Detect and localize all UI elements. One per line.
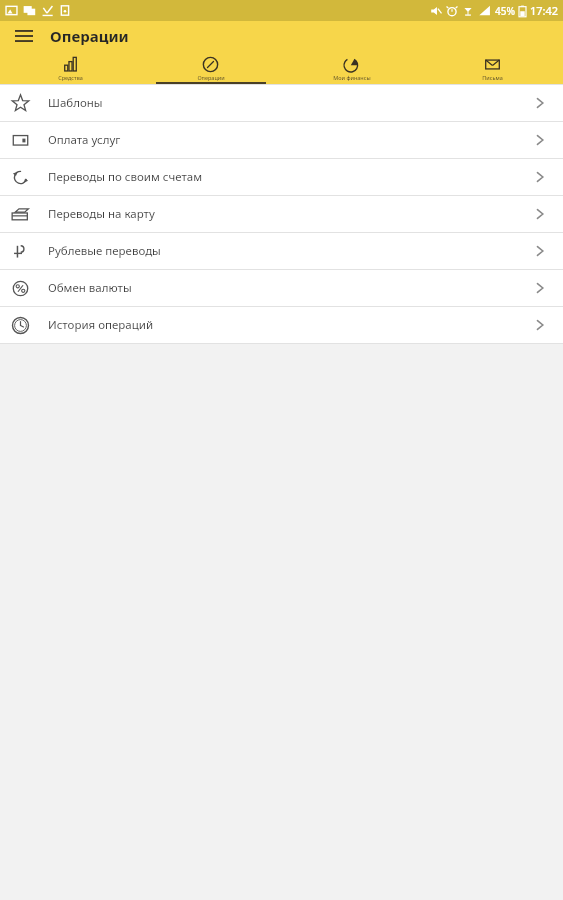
staticText: Оплата услуг	[48, 132, 531, 148]
button[interactable]: Переводы по своим счетам	[0, 159, 563, 195]
button[interactable]: Переводы на карту	[0, 196, 563, 232]
staticText: Переводы на карту	[48, 206, 531, 222]
button[interactable]: История операций	[0, 307, 563, 343]
button[interactable]: Оплата услуг	[0, 122, 563, 158]
staticText: Шаблоны	[48, 95, 531, 111]
button[interactable]: Рублевые переводы	[0, 233, 563, 269]
button[interactable]: Средства	[0, 50, 140, 84]
staticText: Переводы по своим счетам	[48, 169, 531, 185]
staticText: Операции	[197, 74, 225, 81]
button[interactable]: Обмен валюты	[0, 270, 563, 306]
staticText: 17:42	[530, 3, 559, 18]
button[interactable]: Шаблоны	[0, 85, 563, 121]
button[interactable]: Операции	[140, 50, 281, 84]
staticText: Письма	[482, 74, 503, 81]
staticText: Обмен валюты	[48, 280, 531, 296]
staticText: Средства	[58, 74, 83, 81]
staticText: 45%	[495, 4, 515, 18]
staticText: История операций	[48, 317, 531, 333]
button[interactable]: Мои финансы	[281, 50, 422, 84]
button[interactable]: Menu	[8, 21, 40, 50]
button[interactable]: Письма	[422, 50, 563, 84]
staticText: Мои финансы	[333, 74, 371, 81]
staticText: Рублевые переводы	[48, 243, 531, 259]
staticText: Операции	[50, 26, 129, 46]
